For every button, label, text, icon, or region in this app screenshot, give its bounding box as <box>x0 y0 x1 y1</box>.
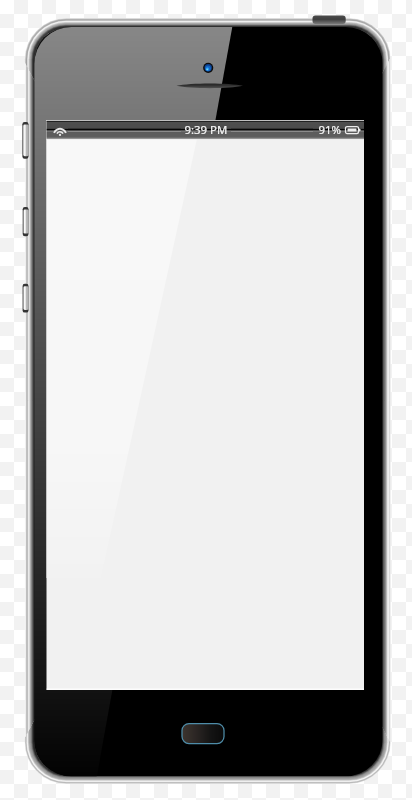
button[interactable] <box>0 0 412 800</box>
